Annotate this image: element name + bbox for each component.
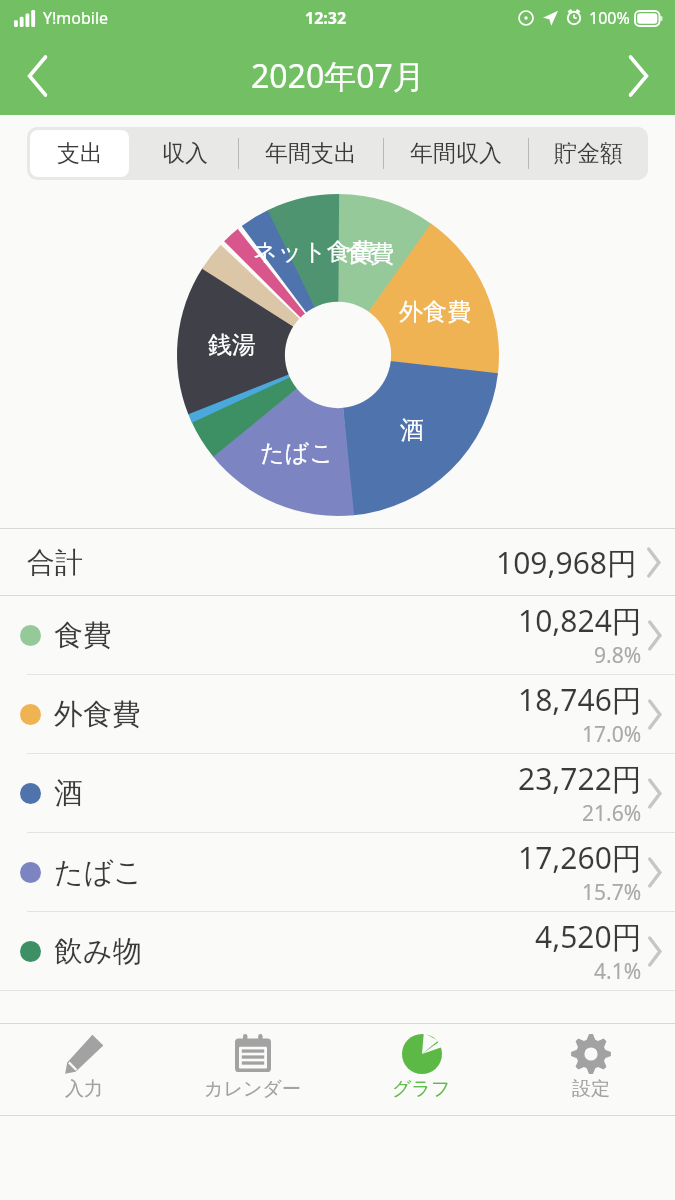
button[interactable]: 飲み物 (0, 912, 675, 990)
staticText: 9.8% (594, 641, 642, 670)
button[interactable]: Previous month (0, 36, 74, 115)
button[interactable]: 年間支出 (238, 127, 383, 180)
staticText: 合計 (27, 545, 83, 580)
staticText: たばこ (54, 854, 144, 891)
staticText: 15.7% (582, 878, 642, 907)
staticText: 23,722円 (518, 758, 642, 799)
staticText: 年間収入 (410, 139, 502, 168)
button[interactable]: グラフ (337, 1024, 506, 1115)
button[interactable]: 合計 (0, 529, 675, 595)
staticText: 外食費 (54, 696, 141, 733)
staticText: ネット食費 (253, 237, 375, 267)
staticText: 銭湯 (208, 330, 256, 360)
staticText: 12:32 (305, 7, 347, 29)
staticText: 4,520円 (535, 916, 642, 957)
staticText: 17,260円 (518, 837, 642, 878)
staticText: カレンダー (204, 1077, 301, 1101)
staticText: 支出 (57, 139, 103, 168)
button[interactable]: 支出 (27, 127, 132, 180)
button[interactable]: カレンダー (168, 1024, 337, 1115)
button[interactable]: 設定 (506, 1024, 675, 1115)
staticText: たばこ (260, 438, 334, 468)
staticText: 年間支出 (265, 139, 357, 168)
button[interactable]: 貯金額 (528, 127, 648, 180)
staticText: 食費 (54, 617, 112, 654)
staticText: Y!mobile (43, 7, 109, 29)
button[interactable]: 年間収入 (383, 127, 528, 180)
staticText: 18,746円 (518, 679, 642, 720)
button[interactable]: 収入 (132, 127, 238, 180)
staticText: 4.1% (594, 957, 642, 986)
staticText: 酒 (400, 415, 424, 445)
button[interactable]: たばこ (0, 833, 675, 911)
staticText: 食費 (346, 239, 394, 269)
staticText: 収入 (162, 139, 208, 168)
staticText: グラフ (392, 1077, 451, 1101)
staticText: 100% (589, 7, 630, 29)
button[interactable]: 酒 (0, 754, 675, 832)
button[interactable]: Next month (601, 36, 675, 115)
staticText: 設定 (572, 1077, 610, 1101)
staticText: 21.6% (582, 799, 642, 828)
button[interactable]: 外食費 (0, 675, 675, 753)
staticText: 外食費 (399, 297, 471, 327)
staticText: 17.0% (582, 720, 642, 749)
staticText: 109,968円 (496, 542, 637, 583)
staticText: 2020年07月 (251, 54, 425, 98)
staticText: 飲み物 (54, 933, 142, 970)
staticText: 10,824円 (518, 600, 642, 641)
button[interactable]: 入力 (0, 1024, 168, 1115)
staticText: 入力 (65, 1077, 103, 1101)
staticText: 貯金額 (554, 139, 623, 168)
staticText: 酒 (54, 775, 83, 812)
button[interactable]: 食費 (0, 596, 675, 674)
